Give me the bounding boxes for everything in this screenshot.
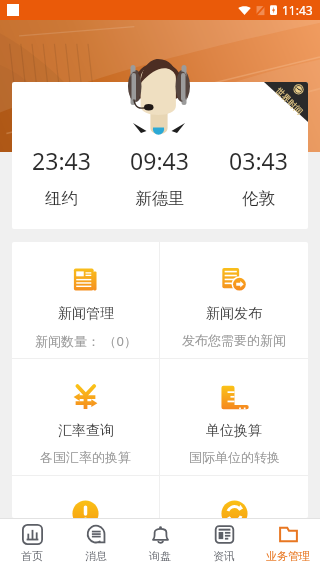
staticText: 询盘 [149,549,171,563]
staticText: 世界时间 [273,86,305,117]
button[interactable] [12,476,159,518]
staticText: 新闻发布 [206,305,262,323]
button[interactable]: 03:43 [209,145,308,209]
staticText: 资讯 [213,549,235,563]
staticText: 单位换算 [206,422,262,440]
staticText: 国际单位的转换 [189,449,280,465]
staticText: 伦敦 [242,188,275,209]
button[interactable]: 世界时间 [264,82,308,122]
button[interactable]: 消息 [64,518,128,568]
button[interactable]: 汇率查询 [12,359,159,475]
staticText: 各国汇率的换算 [40,449,131,465]
staticText: 新闻管理 [58,305,114,323]
button[interactable]: 资讯 [192,518,256,568]
staticText: 发布您需要的新闻 [182,332,286,348]
button[interactable]: 单位换算 [160,359,308,475]
staticText: 新闻数量： （0） [35,332,137,350]
button[interactable]: 业务管理 [256,518,320,568]
staticText: 首页 [21,549,43,563]
staticText: 汇率查询 [58,422,114,440]
staticText: 纽约 [45,188,78,209]
button[interactable]: 新闻管理 [12,242,159,358]
staticText: 23:43 [32,145,91,176]
staticText: 11:43 [282,2,313,18]
button[interactable]: 询盘 [128,518,192,568]
staticText: 09:43 [130,145,189,176]
staticText: 消息 [85,549,107,563]
staticText: 业务管理 [266,549,310,563]
button[interactable] [160,476,308,518]
button[interactable]: 09:43 [110,145,209,209]
staticText: 新德里 [135,188,185,209]
staticText: 03:43 [229,145,288,176]
button[interactable]: 23:43 [12,145,110,209]
button[interactable]: 首页 [0,518,64,568]
button[interactable]: 新闻发布 [160,242,308,358]
